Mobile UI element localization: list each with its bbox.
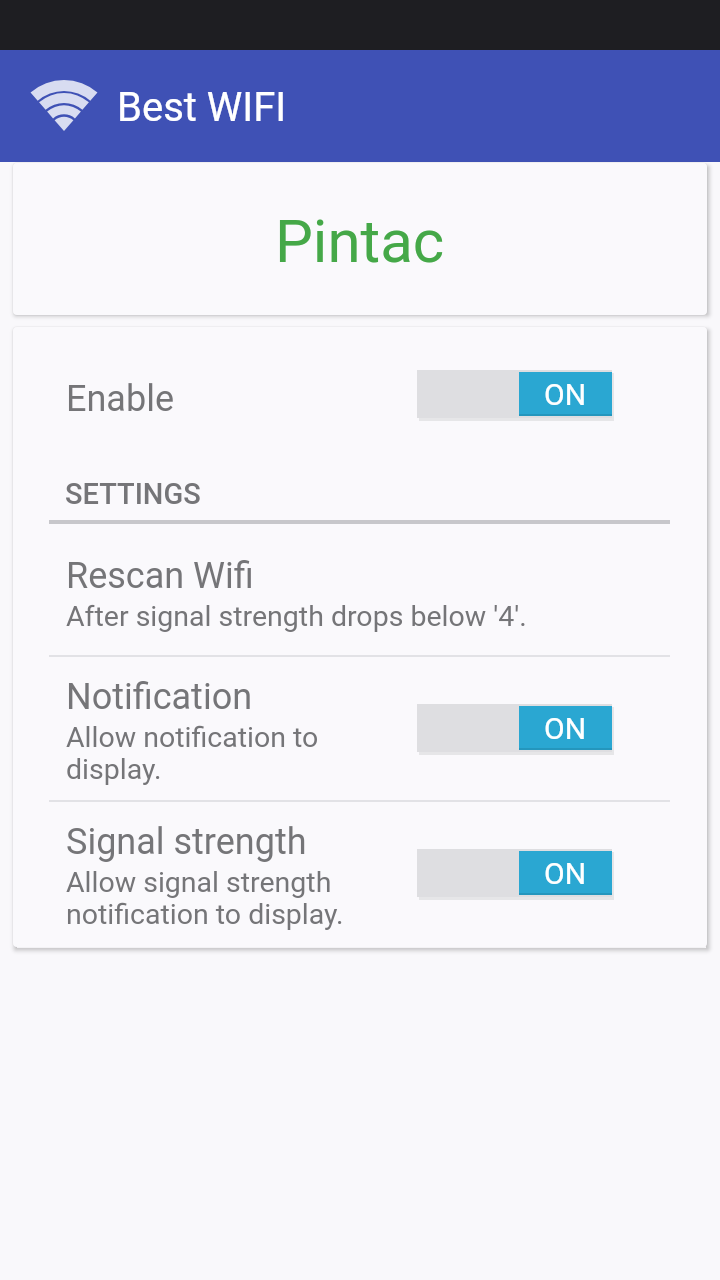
button[interactable]: Toggle (417, 704, 614, 756)
button[interactable]: Toggle (417, 849, 614, 901)
button[interactable]: Toggle (417, 370, 614, 422)
other: WiFi (31, 80, 97, 131)
staticText: Signal strength (66, 821, 307, 863)
staticText: Allow signal strength notification to di… (66, 866, 344, 930)
staticText: Allow notification to display. (66, 721, 319, 785)
button[interactable]: Notification (13, 665, 707, 810)
staticText: ON (544, 856, 587, 891)
staticText: Best WIFI (117, 84, 287, 131)
staticText: Rescan Wifi (66, 555, 254, 597)
staticText: ON (544, 711, 587, 746)
staticText: Notification (66, 676, 253, 718)
staticText: ON (544, 377, 587, 412)
staticText: Pintac (275, 206, 445, 276)
staticText: SETTINGS (65, 477, 201, 511)
button[interactable]: Enable (13, 367, 707, 431)
staticText: After signal strength drops below '4'. (66, 600, 527, 633)
staticText: Enable (66, 378, 174, 420)
button[interactable]: Signal strength (13, 810, 707, 947)
button[interactable]: Rescan Wifi (13, 547, 707, 659)
